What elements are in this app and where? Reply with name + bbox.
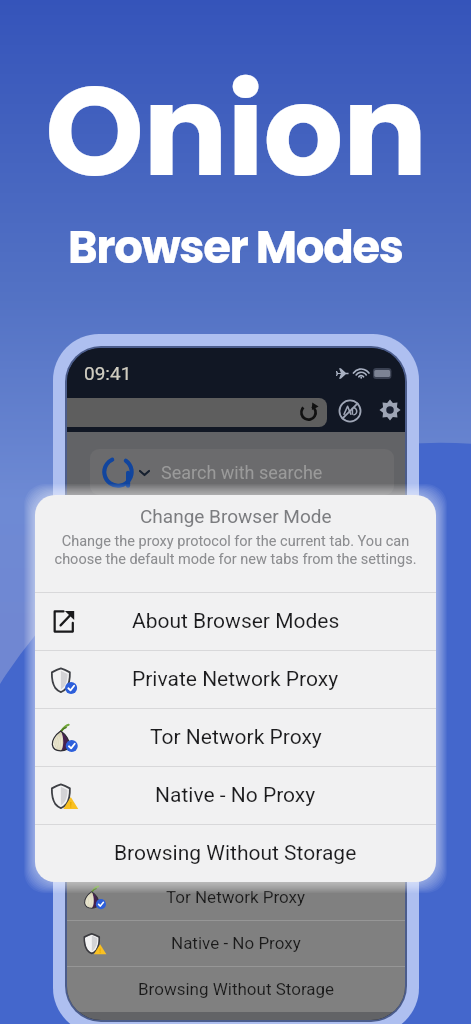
staticText: Change Browser Mode xyxy=(140,505,332,527)
staticText: Native - No Proxy xyxy=(155,783,316,808)
button[interactable]: Native - No Proxy xyxy=(35,766,436,824)
staticText: About Browser Modes xyxy=(132,609,340,634)
staticText: Onion xyxy=(45,43,427,219)
button[interactable]: About Browser Modes xyxy=(67,782,405,828)
staticText: Native - No Proxy xyxy=(171,933,301,953)
button[interactable]: About Browser Modes xyxy=(35,592,436,650)
button[interactable]: Settings xyxy=(379,399,401,421)
button[interactable]: Tor Network Proxy xyxy=(67,874,405,920)
staticText: Private Network Proxy xyxy=(132,667,339,692)
staticText: Change the proxy protocol for the curren… xyxy=(83,738,389,768)
staticText: Change the proxy protocol for the curren… xyxy=(53,533,418,568)
staticText: Private Network Proxy xyxy=(153,841,320,861)
button[interactable]: Reload xyxy=(67,398,327,427)
other: Reload xyxy=(298,402,319,423)
button[interactable]: Native - No Proxy xyxy=(67,920,405,966)
staticText: 09:41 xyxy=(84,362,132,384)
staticText: Tor Network Proxy xyxy=(166,887,306,907)
staticText: Browser Modes xyxy=(68,216,403,279)
staticText: Tor Network Proxy xyxy=(150,725,322,750)
button[interactable]: Change Browser Mode xyxy=(67,704,405,782)
staticText: Change Browser Mode xyxy=(150,714,322,734)
staticText: About Browser Modes xyxy=(152,795,320,815)
button[interactable]: Block ads xyxy=(338,399,362,423)
button[interactable]: Private Network Proxy xyxy=(67,828,405,874)
button[interactable]: Browsing Without Storage xyxy=(67,966,405,1012)
button[interactable]: Search with searche xyxy=(90,449,394,495)
button[interactable]: Private Network Proxy xyxy=(35,650,436,708)
button[interactable]: Browsing Without Storage xyxy=(35,824,436,882)
staticText: Browsing Without Storage xyxy=(138,979,335,999)
button[interactable]: Tor Network Proxy xyxy=(35,708,436,766)
staticText: Browsing Without Storage xyxy=(114,841,357,866)
staticText: Search with searche xyxy=(161,462,323,483)
